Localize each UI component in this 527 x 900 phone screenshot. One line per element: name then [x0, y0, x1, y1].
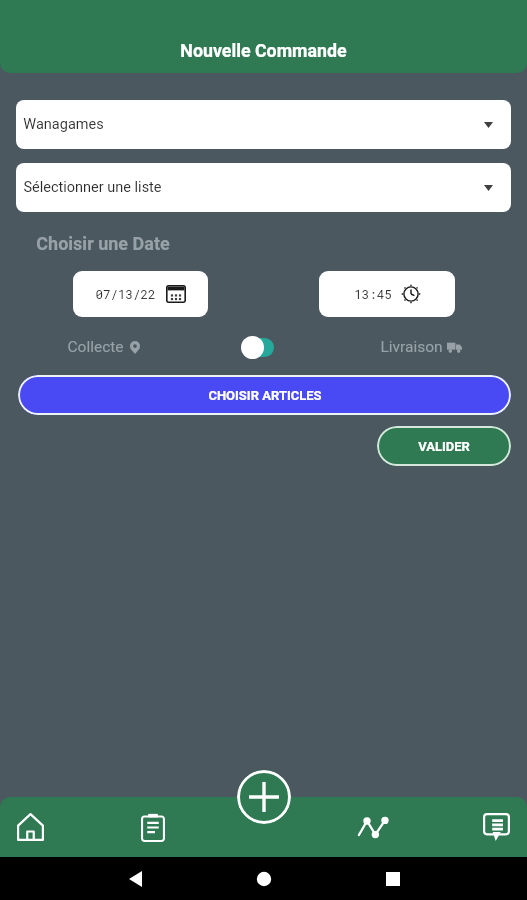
staticText: 13:45	[354, 286, 392, 302]
staticText: Sélectionner une liste	[23, 179, 162, 196]
button[interactable]: Add new order	[237, 770, 291, 824]
staticText: Wanagames	[23, 116, 104, 133]
button[interactable]: CHOISIR ARTICLES	[18, 375, 511, 415]
button[interactable]: Wanagames	[16, 100, 511, 149]
button[interactable]: Messages	[471, 797, 522, 857]
staticText: Collecte	[67, 338, 124, 356]
button[interactable]: 13:45	[319, 271, 455, 317]
staticText: CHOISIR ARTICLES	[208, 388, 322, 403]
staticText: 07/13/22	[95, 286, 156, 302]
button[interactable]: Statistics	[348, 797, 399, 857]
staticText: Choisir une Date	[36, 233, 170, 254]
button[interactable]: VALIDER	[377, 426, 511, 466]
button[interactable]	[241, 336, 274, 359]
button[interactable]: Sélectionner une liste	[16, 163, 511, 212]
button[interactable]: 07/13/22	[73, 271, 208, 317]
button[interactable]: Orders	[127, 797, 178, 857]
staticText: VALIDER	[418, 439, 470, 454]
button[interactable]: Home	[5, 797, 56, 857]
staticText: Livraison	[380, 338, 443, 356]
staticText: Nouvelle Commande	[180, 40, 347, 61]
